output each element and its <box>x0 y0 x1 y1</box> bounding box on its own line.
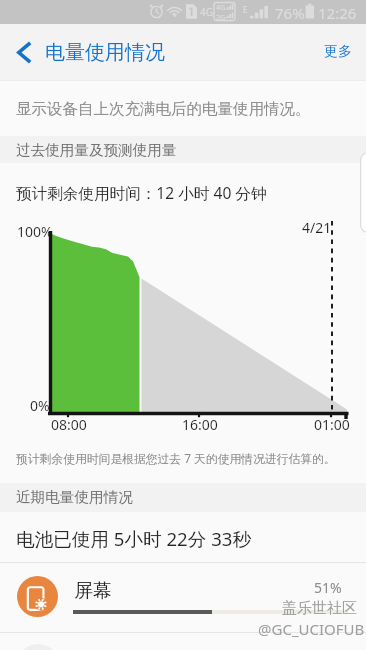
staticText: 近期电量使用情况 <box>16 488 133 506</box>
staticText: 屏幕 <box>74 579 112 603</box>
staticText: 08:00 <box>51 415 87 434</box>
staticText: 更多 <box>324 43 352 61</box>
staticText: E <box>243 4 248 15</box>
staticText: 电池已使用 5小时 22分 33秒 <box>16 526 252 551</box>
button[interactable]: 更多 <box>313 34 363 70</box>
button[interactable]: Back <box>6 34 42 70</box>
staticText: 预计剩余使用时间：12 小时 40 分钟 <box>16 182 267 203</box>
staticText: 100% <box>17 222 53 241</box>
staticText: 01:00 <box>314 415 350 434</box>
staticText: 2G <box>216 13 226 23</box>
staticText: 4/21 <box>302 218 332 237</box>
staticText: 16:00 <box>182 415 218 434</box>
staticText: 预计剩余使用时间是根据您过去 7 天的使用情况进行估算的。 <box>16 450 336 466</box>
staticText: 电量使用情况 <box>45 40 165 65</box>
staticText: 51% <box>314 578 342 597</box>
staticText: 4G <box>216 3 226 13</box>
staticText: @GC_UCIOFUB <box>258 619 365 639</box>
staticText: 76% <box>275 3 305 23</box>
staticText: 0% <box>30 396 50 415</box>
staticText: 4G <box>200 5 213 19</box>
button[interactable]: 屏幕 <box>0 563 366 632</box>
staticText: 过去使用量及预测使用量 <box>16 141 177 159</box>
staticText: 显示设备自上次充满电后的电量使用情况。 <box>16 99 311 119</box>
staticText: 盖乐世社区 <box>282 599 357 618</box>
staticText: 12:26 <box>318 3 357 23</box>
